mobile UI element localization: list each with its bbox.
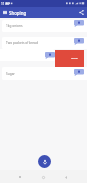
button[interactable]: Delete — [55, 50, 84, 67]
button[interactable]: Menu — [0, 7, 9, 18]
button[interactable]: Sugar — [2, 67, 87, 80]
button[interactable]: Home — [37, 171, 49, 183]
staticText: Sugar — [6, 72, 15, 76]
button[interactable]: Recents — [14, 171, 26, 183]
staticText: 11:56 — [1, 2, 10, 6]
button[interactable]: Share — [76, 7, 87, 18]
button[interactable]: Two packets of bread — [2, 37, 87, 49]
staticText: Shoping — [9, 10, 27, 16]
staticText: Delete — [71, 57, 78, 60]
button[interactable]: 1kg onions — [2, 20, 87, 32]
button[interactable]: Back — [60, 171, 72, 183]
button[interactable]: Voice input — [38, 155, 51, 168]
staticText: 1kg onions — [6, 24, 23, 28]
staticText: Two packets of bread — [6, 41, 38, 45]
